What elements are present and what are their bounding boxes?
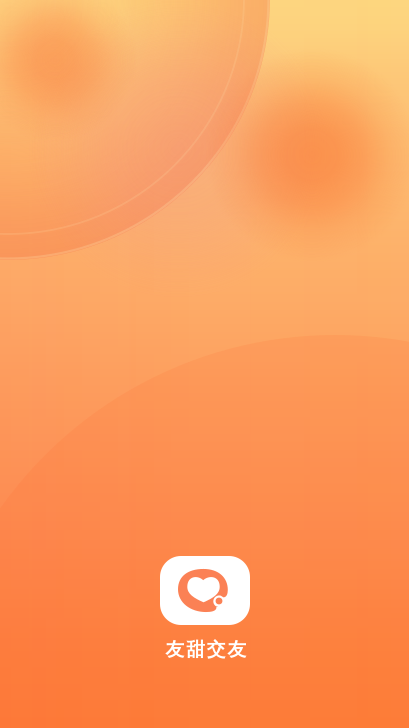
staticText: 友甜交友	[166, 638, 246, 661]
